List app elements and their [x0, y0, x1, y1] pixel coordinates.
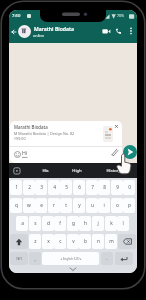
button[interactable]: v [67, 234, 79, 249]
staticText: a [21, 220, 24, 227]
staticText: His [42, 168, 49, 174]
button[interactable] [102, 28, 111, 35]
button[interactable]: l [117, 216, 129, 231]
button[interactable]: g [67, 216, 79, 231]
staticText: 3 [40, 184, 43, 191]
button[interactable]: ◂ English (US) ▸ [42, 252, 99, 265]
staticText: j [97, 220, 99, 227]
staticText: w [27, 202, 31, 209]
staticText: l [122, 220, 124, 227]
button[interactable] [118, 234, 136, 249]
button[interactable]: d [42, 216, 54, 231]
button[interactable]: 7 [86, 180, 98, 195]
staticText: ₹99.00 [14, 136, 26, 141]
button[interactable]: i [98, 198, 110, 213]
staticText: u [91, 202, 94, 209]
staticText: 7:50 [12, 13, 21, 19]
button[interactable]: f [54, 216, 66, 231]
button[interactable]: p [123, 198, 135, 213]
button[interactable]: c [54, 234, 66, 249]
button[interactable] [14, 151, 21, 158]
button[interactable]: 4 [48, 180, 60, 195]
staticText: ?#1 [16, 256, 22, 261]
button[interactable]: u [86, 198, 98, 213]
button[interactable]: k [105, 216, 117, 231]
staticText: Marathi Biodata [34, 26, 75, 33]
button[interactable] [123, 145, 137, 159]
button[interactable] [11, 29, 17, 35]
staticText: i [103, 202, 105, 209]
staticText: 0 [128, 184, 131, 191]
staticText: q [15, 202, 18, 209]
button[interactable]: 8 [98, 180, 110, 195]
button[interactable]: 6 [73, 180, 85, 195]
staticText: m [109, 238, 114, 245]
button[interactable]: j [92, 216, 104, 231]
staticText: x [47, 238, 50, 245]
staticText: History [106, 168, 121, 174]
button[interactable] [18, 25, 31, 38]
button[interactable]: 0 [123, 180, 135, 195]
staticText: . [106, 255, 108, 262]
button[interactable] [115, 252, 133, 265]
staticText: p [128, 202, 131, 209]
staticText: r [53, 202, 55, 209]
staticText: Marathi Biodata [14, 124, 48, 130]
staticText: b [84, 238, 87, 245]
button[interactable]: o [111, 198, 123, 213]
staticText: d [47, 220, 50, 227]
staticText: g [72, 220, 75, 227]
button[interactable]: b [79, 234, 91, 249]
staticText: 7 [91, 184, 94, 191]
button[interactable]: 9 [111, 180, 123, 195]
button[interactable]: h [79, 216, 91, 231]
button[interactable]: t [60, 198, 72, 213]
button[interactable]: 5 [60, 180, 72, 195]
staticText: , [34, 256, 36, 262]
staticText: 1 [15, 184, 18, 191]
button[interactable]: e [35, 198, 47, 213]
staticText: 4 [53, 184, 56, 191]
staticText: 9 [116, 184, 119, 191]
button[interactable]: w [23, 198, 35, 213]
button[interactable]: n [92, 234, 104, 249]
staticText: 70% [117, 13, 125, 18]
staticText: v [72, 238, 75, 245]
staticText: High [72, 168, 82, 174]
button[interactable]: , [29, 252, 41, 265]
button[interactable] [10, 234, 28, 249]
staticText: e [40, 202, 43, 209]
staticText: 5 [65, 184, 68, 191]
staticText: y [78, 202, 81, 209]
staticText: 8 [103, 184, 106, 191]
button[interactable]: His [35, 163, 55, 178]
button[interactable]: 1 [10, 180, 22, 195]
button[interactable] [110, 147, 119, 157]
button[interactable]: a [16, 216, 28, 231]
staticText: Hi [22, 149, 28, 156]
staticText: online [33, 33, 45, 38]
button[interactable]: q [10, 198, 22, 213]
button[interactable]: High [67, 163, 87, 178]
button[interactable] [128, 27, 134, 35]
button[interactable]: 3 [35, 180, 47, 195]
staticText: c [59, 238, 62, 245]
button[interactable]: s [29, 216, 41, 231]
button[interactable]: y [73, 198, 85, 213]
button[interactable]: 2 [23, 180, 35, 195]
button[interactable]: r [48, 198, 60, 213]
staticText: f [59, 220, 61, 227]
button[interactable]: x [42, 234, 54, 249]
button[interactable] [13, 167, 21, 175]
staticText: M Marathi Biodata | Design No. 82 [14, 131, 75, 136]
button[interactable] [115, 28, 122, 35]
staticText: 2 [28, 184, 31, 191]
staticText: n [97, 238, 100, 245]
button[interactable]: z [29, 234, 41, 249]
button[interactable] [114, 124, 119, 129]
button[interactable]: ?#1 [10, 252, 28, 265]
staticText: t [65, 202, 67, 209]
button[interactable]: History [101, 163, 125, 178]
button[interactable]: m [105, 234, 117, 249]
